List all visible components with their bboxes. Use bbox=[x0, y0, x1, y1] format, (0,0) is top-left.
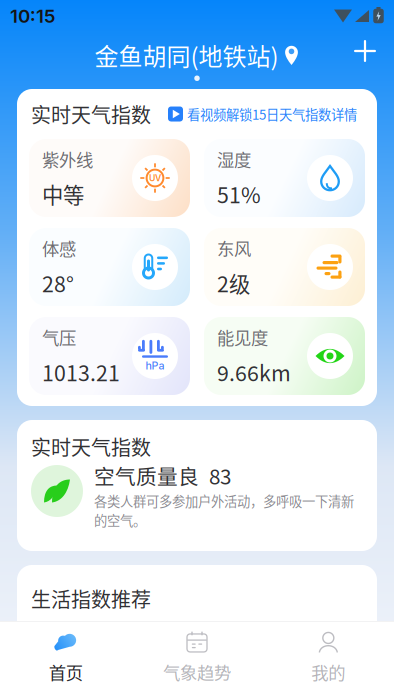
staticText: 能见度 bbox=[217, 324, 268, 350]
staticText: 51% bbox=[217, 179, 261, 209]
staticText: 中等 bbox=[42, 179, 84, 209]
button[interactable]: 紫外线 bbox=[29, 139, 190, 217]
staticText: 看视频解锁15日天气指数详情 bbox=[187, 104, 357, 124]
staticText: 实时天气指数 bbox=[31, 432, 151, 461]
staticText: 实时天气指数 bbox=[31, 99, 151, 128]
staticText: 28° bbox=[42, 268, 74, 298]
staticText: 体感 bbox=[42, 235, 76, 261]
staticText: 各类人群可多参加户外活动，多呼吸一下清新的空气。 bbox=[94, 491, 354, 530]
button[interactable]: 体感 bbox=[29, 228, 190, 306]
staticText: 2级 bbox=[217, 268, 250, 298]
staticText: hPa bbox=[145, 359, 164, 372]
button[interactable]: 东风 bbox=[204, 228, 365, 306]
staticText: 我的 bbox=[311, 659, 345, 685]
staticText: 东风 bbox=[217, 235, 251, 261]
button[interactable]: 气象趋势 bbox=[131, 619, 263, 700]
button[interactable]: Add city bbox=[343, 30, 387, 72]
button[interactable]: 实时天气指数 bbox=[17, 420, 377, 551]
staticText: 金鱼胡同(地铁站) bbox=[94, 38, 278, 72]
staticText: 气压 bbox=[42, 324, 76, 350]
staticText: 紫外线 bbox=[42, 146, 93, 172]
staticText: 首页 bbox=[49, 659, 83, 685]
staticText: 湿度 bbox=[217, 146, 251, 172]
staticText: 气象趋势 bbox=[163, 659, 231, 685]
staticText: 空气质量良 83 bbox=[94, 460, 231, 490]
staticText: 9.66km bbox=[217, 357, 291, 387]
button[interactable]: 湿度 bbox=[204, 139, 365, 217]
staticText: 1013.21 bbox=[42, 357, 120, 387]
staticText: 生活指数推荐 bbox=[31, 584, 151, 613]
button[interactable]: 金鱼胡同(地铁站) bbox=[94, 38, 299, 72]
staticText: 10:15 bbox=[10, 5, 55, 27]
button[interactable]: 首页 bbox=[0, 619, 131, 700]
staticText: UV bbox=[149, 173, 161, 183]
button[interactable]: 气压 bbox=[29, 317, 190, 395]
button[interactable]: 能见度 bbox=[204, 317, 365, 395]
button[interactable]: 看视频解锁15日天气指数详情 bbox=[168, 104, 365, 124]
button[interactable]: 我的 bbox=[263, 619, 394, 700]
